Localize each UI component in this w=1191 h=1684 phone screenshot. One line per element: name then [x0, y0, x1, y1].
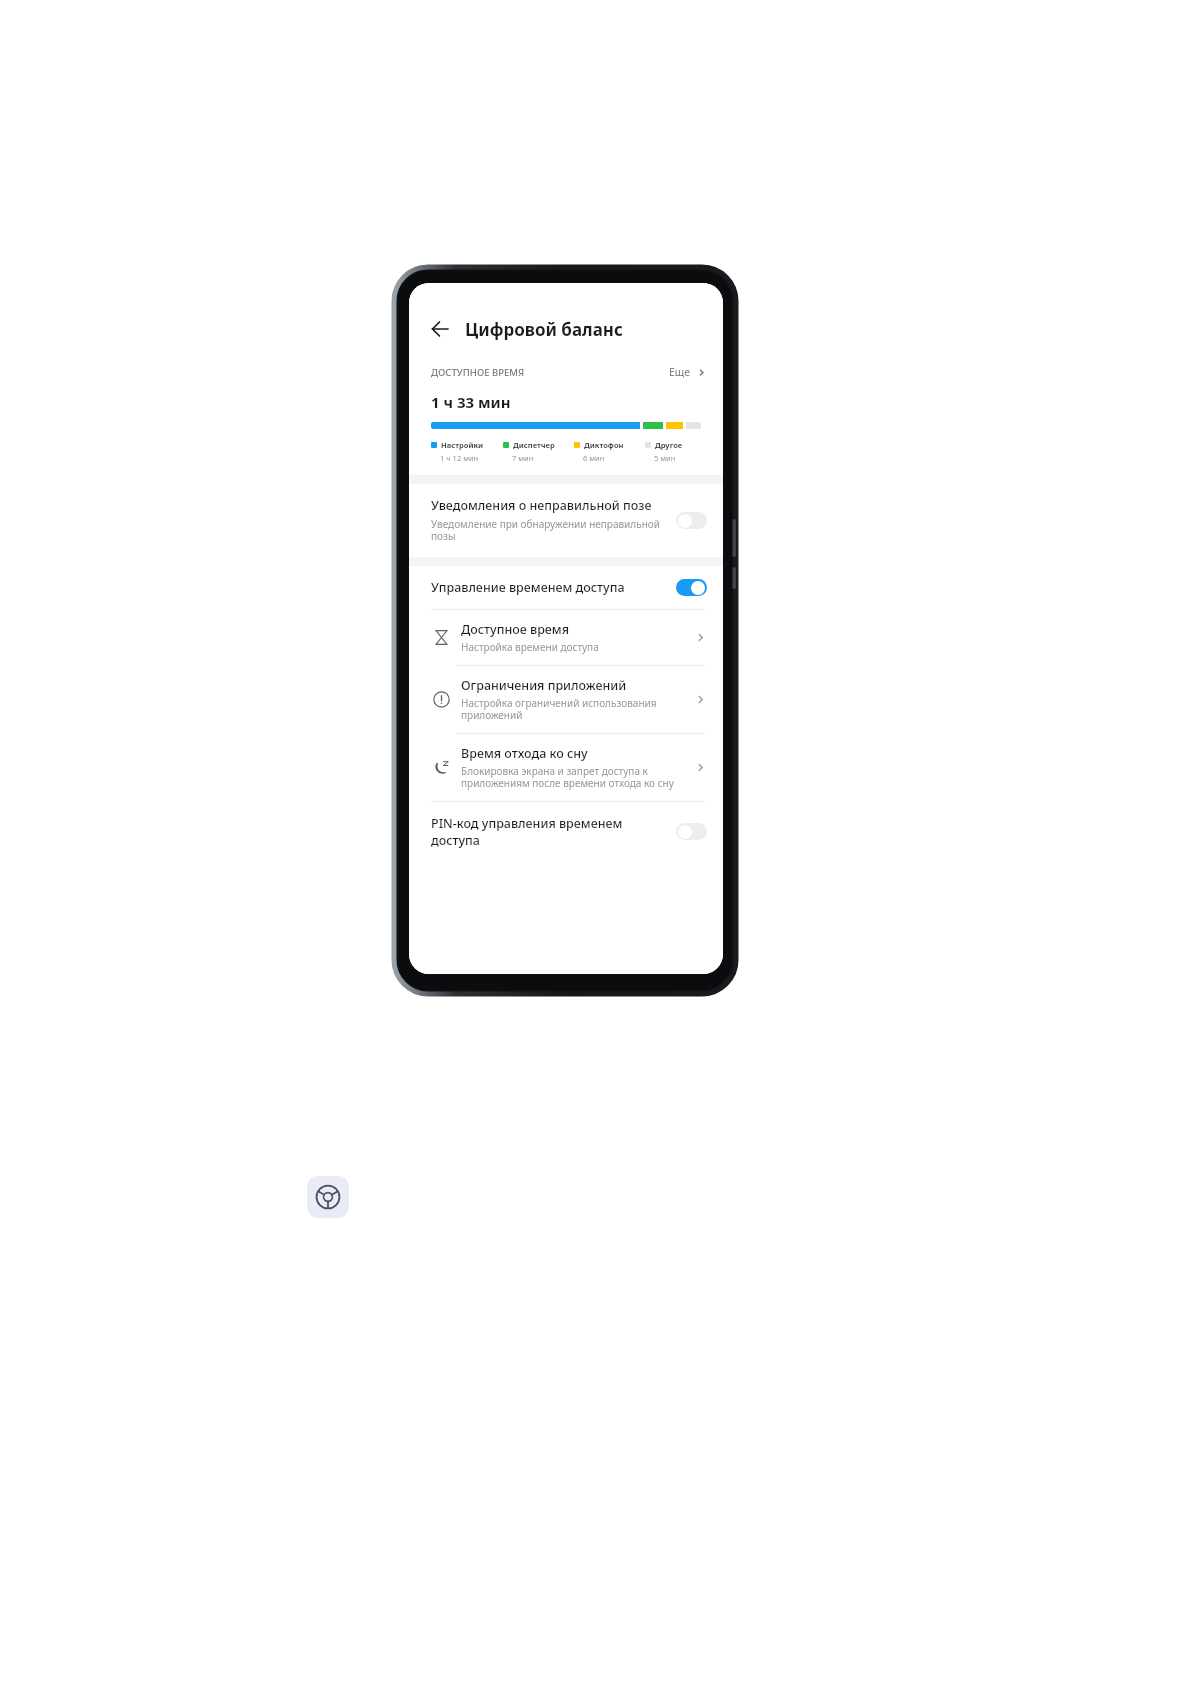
staticText: Настройки [441, 440, 484, 450]
button[interactable]: Включено [676, 579, 707, 596]
staticText: Время отхода ко сну [461, 745, 588, 762]
staticText: 1 ч 12 мин [440, 453, 479, 463]
staticText: Управление временем доступа [431, 579, 676, 596]
staticText: Уведомление при обнаружении неправильной… [431, 517, 666, 543]
staticText: Диспетчер [513, 440, 555, 450]
button[interactable]: PIN-код управления временем доступа [409, 802, 723, 862]
button[interactable]: Уведомления о неправильной позе [409, 484, 723, 557]
staticText: Другое [655, 440, 683, 450]
staticText: Диктофон [584, 440, 624, 450]
staticText: Ограничения приложений [461, 677, 627, 694]
staticText: Уведомления о неправильной позе [431, 497, 652, 514]
button[interactable]: Выключено [676, 512, 707, 529]
staticText: Настройка времени доступа [461, 640, 599, 654]
other: Внимание [433, 691, 450, 708]
button[interactable]: Выключено [676, 823, 707, 840]
staticText: Доступное время [461, 621, 570, 638]
other: Сон [433, 759, 450, 776]
staticText: 1 ч 33 мин [431, 392, 511, 412]
staticText: 7 мин [512, 453, 534, 463]
staticText: 5 мин [654, 453, 676, 463]
staticText: ДОСТУПНОЕ ВРЕМЯ [431, 366, 525, 379]
staticText: 6 мин [583, 453, 605, 463]
other: Песочные часы [433, 629, 450, 646]
staticText: Еще [669, 365, 691, 379]
staticText: Настройка ограничений использования прил… [461, 696, 686, 722]
staticText: Цифровой баланс [465, 318, 623, 341]
button[interactable]: Сон [409, 734, 723, 801]
staticText: PIN-код управления временем доступа [431, 815, 648, 848]
staticText: Блокировка экрана и запрет доступа к при… [461, 764, 686, 790]
button[interactable]: Управление временем доступа [409, 566, 723, 609]
button[interactable]: Внимание [409, 666, 723, 733]
button[interactable]: Песочные часы [409, 610, 723, 665]
button[interactable]: ДОСТУПНОЕ ВРЕМЯ [409, 365, 723, 379]
button[interactable]: Приложение Настройки [307, 1176, 349, 1218]
button[interactable]: Назад [423, 312, 457, 346]
